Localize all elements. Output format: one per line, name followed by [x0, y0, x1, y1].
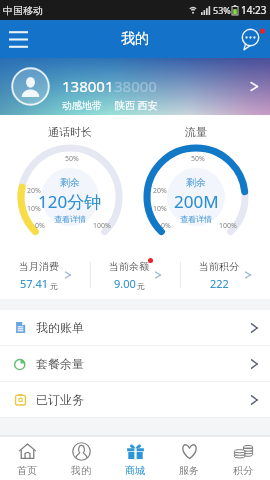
button[interactable]: 当前余额	[91, 251, 180, 299]
staticText: 流量	[185, 125, 207, 139]
staticText: 53%	[213, 4, 231, 16]
staticText: 38000	[114, 76, 157, 96]
staticText: 陕西 西安	[115, 98, 158, 112]
staticText: 10%	[153, 204, 167, 214]
staticText: 查看详情	[54, 214, 86, 224]
staticText: 20%	[27, 186, 41, 196]
staticText: 0%	[161, 221, 171, 231]
staticText: 14:23	[241, 3, 267, 17]
button[interactable]: 服务	[162, 437, 216, 480]
staticText: 动感地带	[62, 99, 102, 112]
staticText: 剩余	[60, 176, 80, 189]
staticText: 100%	[219, 221, 237, 231]
staticText: 138001	[62, 76, 114, 96]
staticText: 10%	[27, 204, 41, 214]
staticText: 我的	[121, 30, 149, 48]
staticText: 当前积分	[199, 260, 239, 273]
staticText: 套餐余量	[36, 356, 84, 371]
staticText: 查看详情	[180, 214, 212, 224]
staticText: 元	[137, 281, 145, 291]
staticText: 中国移动	[3, 4, 43, 17]
button[interactable]: 138001	[0, 58, 270, 115]
button[interactable]: 当前积分	[181, 251, 270, 299]
button[interactable]: 首页	[0, 437, 54, 480]
staticText: 当前余额	[109, 260, 149, 273]
staticText: 通话时长	[48, 125, 92, 139]
staticText: 首页	[17, 464, 37, 477]
staticText: 222	[210, 276, 229, 291]
staticText: 已订业务	[36, 392, 84, 407]
button[interactable]: 流量	[132, 115, 260, 251]
button[interactable]: 商城	[108, 437, 162, 480]
staticText: 服务	[179, 464, 199, 477]
staticText: 0%	[35, 221, 45, 231]
button[interactable]: 通话时长	[6, 115, 134, 251]
staticText: 200M	[174, 190, 219, 213]
staticText: 50%	[191, 154, 205, 164]
button[interactable]: 已订业务	[0, 382, 270, 417]
staticText: 当月消费	[19, 260, 59, 273]
staticText: 57.41	[20, 276, 49, 291]
staticText: 20%	[153, 186, 167, 196]
button[interactable]: 积分	[216, 437, 270, 480]
staticText: 50%	[65, 154, 79, 164]
staticText: 我的	[71, 464, 91, 477]
staticText: 积分	[233, 464, 253, 477]
staticText: 元	[50, 281, 58, 291]
button[interactable]: 当月消费	[0, 251, 90, 299]
staticText: 120分钟	[38, 190, 102, 213]
staticText: 9.00	[114, 276, 136, 291]
button[interactable]: 套餐余量	[0, 346, 270, 381]
staticText: 商城	[125, 464, 145, 477]
button[interactable]: Messages	[232, 20, 270, 58]
staticText: 100%	[93, 221, 111, 231]
button[interactable]: 我的账单	[0, 310, 270, 345]
staticText: 剩余	[186, 176, 206, 189]
button[interactable]: 我的	[54, 437, 108, 480]
button[interactable]: Menu	[0, 20, 37, 58]
staticText: 我的账单	[36, 320, 84, 335]
